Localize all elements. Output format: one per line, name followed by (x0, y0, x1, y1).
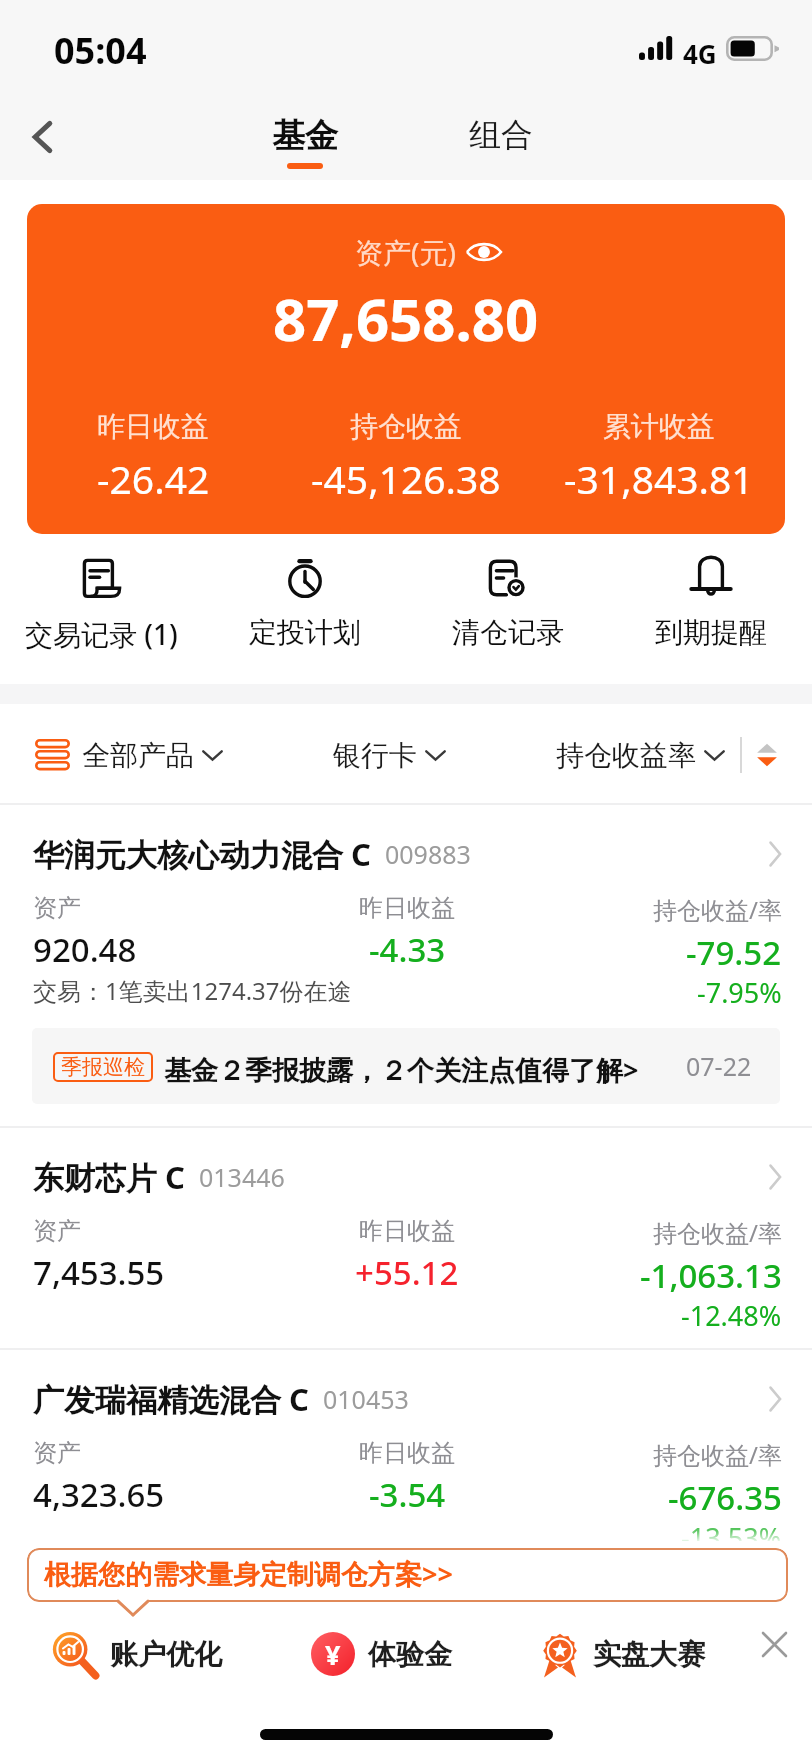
button[interactable]: Sort order (746, 734, 788, 776)
staticText: -31,843.81 (564, 452, 754, 505)
staticText: 定投计划 (249, 615, 361, 650)
button[interactable]: 持仓收益率 (556, 738, 725, 773)
button[interactable]: 实盘大赛 (536, 1629, 705, 1679)
staticText: -13.53% (681, 1519, 782, 1556)
staticText: 持仓收益 (350, 409, 462, 444)
staticText: 持仓收益率 (556, 738, 696, 773)
staticText: 昨日收益 (359, 893, 455, 923)
staticText: 华润元大核心动力混合 C (33, 833, 371, 875)
staticText: 银行卡 (333, 738, 417, 773)
staticText: 持仓收益/率 (653, 1438, 782, 1471)
staticText: 账户优化 (110, 1637, 222, 1672)
staticText: 05:04 (54, 26, 147, 75)
staticText: 东财芯片 C (33, 1156, 185, 1198)
button[interactable]: Close (749, 1619, 799, 1669)
staticText: 资产 (33, 1438, 81, 1468)
staticText: 交易记录 (1) (25, 615, 178, 653)
staticText: 根据您的需求量身定制调仓方案>> (44, 1555, 453, 1592)
staticText: 昨日收益 (359, 1438, 455, 1468)
staticText: 体验金 (368, 1637, 452, 1672)
staticText: 010453 (323, 1382, 409, 1416)
staticText: -45,126.38 (311, 452, 501, 505)
button[interactable]: 银行卡 (333, 738, 446, 773)
staticText: 昨日收益 (359, 1216, 455, 1246)
staticText: -4.33 (369, 927, 446, 972)
staticText: -7.95% (697, 974, 782, 1011)
button[interactable]: 季报巡检 (32, 1028, 780, 1104)
button[interactable]: 资产(元) (27, 204, 785, 534)
button[interactable]: 华润元大核心动力混合 C (0, 804, 812, 1126)
staticText: 持仓收益/率 (653, 1216, 782, 1249)
button[interactable]: 广发瑞福精选混合 C (0, 1349, 812, 1570)
staticText: 4,323.65 (33, 1472, 165, 1517)
staticText: 基金２季报披露，２个关注点值得了解> (164, 1051, 639, 1088)
staticText: 资产(元) (355, 233, 456, 271)
staticText: 实盘大赛 (593, 1637, 705, 1672)
staticText: -26.42 (97, 452, 210, 505)
staticText: 资产 (33, 893, 81, 923)
staticText: -3.54 (369, 1472, 446, 1517)
staticText: -676.35 (668, 1475, 782, 1520)
staticText: ¥ (325, 1636, 341, 1673)
staticText: 资产 (33, 1216, 81, 1246)
staticText: 清仓记录 (452, 615, 564, 650)
staticText: 920.48 (33, 927, 137, 972)
staticText: -79.52 (686, 930, 782, 975)
button[interactable]: 定投计划 (203, 545, 406, 665)
button[interactable]: 清仓记录 (406, 545, 609, 665)
staticText: +55.12 (355, 1250, 459, 1295)
staticText: 87,658.80 (273, 279, 539, 358)
staticText: 季报巡检 (61, 1054, 145, 1080)
button[interactable]: ¥ (311, 1631, 452, 1677)
staticText: 7,453.55 (33, 1250, 165, 1295)
button[interactable]: 东财芯片 C (0, 1127, 812, 1348)
staticText: -12.48% (681, 1297, 782, 1334)
staticText: 009883 (385, 837, 471, 871)
button[interactable]: 交易记录 (1) (0, 545, 203, 665)
staticText: 昨日收益 (97, 409, 209, 444)
staticText: 07-22 (686, 1049, 752, 1083)
button[interactable]: 根据您的需求量身定制调仓方案>> (27, 1548, 788, 1602)
staticText: 基金 (272, 115, 338, 157)
button[interactable]: 账户优化 (50, 1627, 222, 1681)
staticText: 持仓收益/率 (653, 893, 782, 926)
button[interactable]: Back (11, 105, 75, 169)
staticText: 广发瑞福精选混合 C (33, 1378, 309, 1420)
staticText: 交易：1笔卖出1274.37份在途 (33, 974, 352, 1007)
staticText: 013446 (199, 1160, 285, 1194)
button[interactable]: 到期提醒 (609, 545, 812, 665)
staticText: 4G (683, 36, 717, 71)
staticText: 累计收益 (603, 409, 715, 444)
staticText: -1,063.13 (640, 1253, 782, 1298)
button[interactable]: 组合 (469, 115, 533, 170)
staticText: 全部产品 (82, 738, 194, 773)
button[interactable]: 基金 (272, 115, 338, 169)
staticText: 组合 (469, 115, 533, 155)
button[interactable]: 全部产品 (82, 738, 223, 773)
staticText: 到期提醒 (655, 615, 767, 650)
